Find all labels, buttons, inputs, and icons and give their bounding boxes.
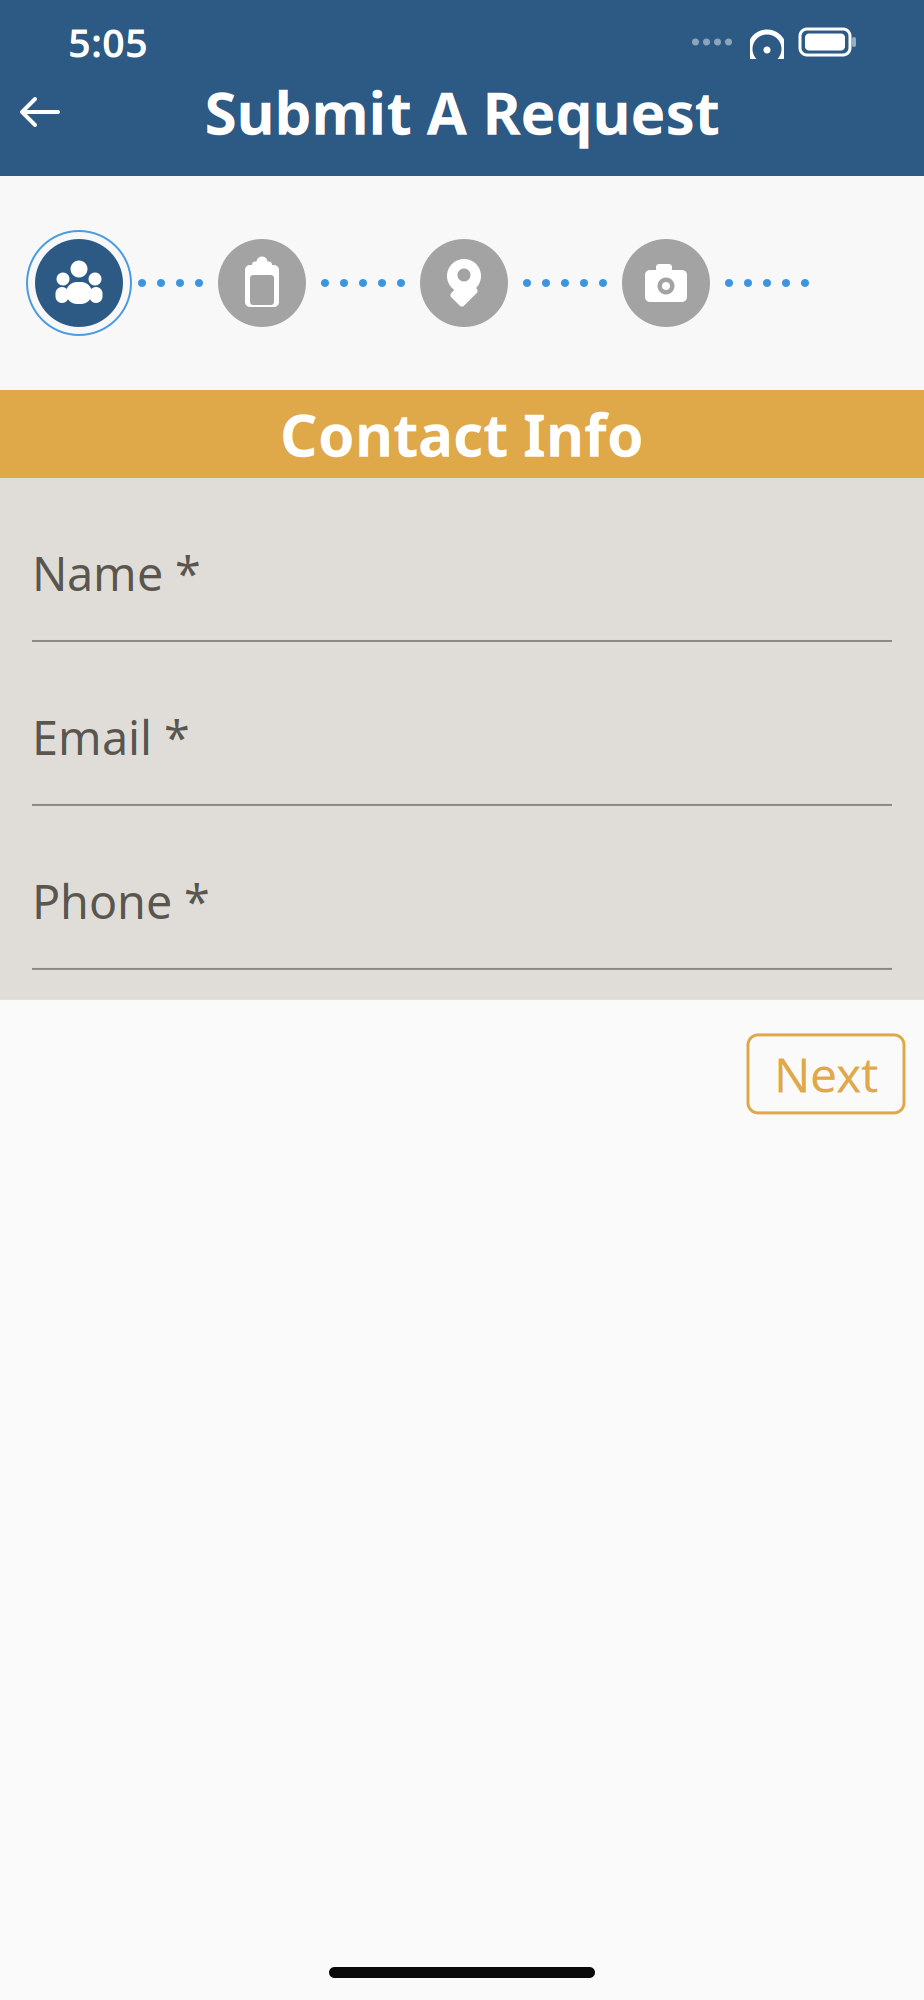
staticText: Submit A Request: [204, 73, 719, 151]
button[interactable]: Location step: [411, 230, 517, 336]
staticText: 5:05: [68, 15, 148, 68]
button[interactable]: Back: [0, 78, 80, 146]
button[interactable]: Photo step: [613, 230, 719, 336]
staticText: Contact Info: [280, 395, 644, 473]
button[interactable]: Request details step: [209, 230, 315, 336]
staticText: Email *: [32, 706, 190, 768]
staticText: Phone *: [32, 870, 210, 932]
staticText: Name *: [32, 542, 201, 604]
button[interactable]: Next: [748, 1035, 904, 1113]
staticText: Next: [774, 1042, 878, 1106]
button[interactable]: Contact Info step: [26, 230, 132, 336]
